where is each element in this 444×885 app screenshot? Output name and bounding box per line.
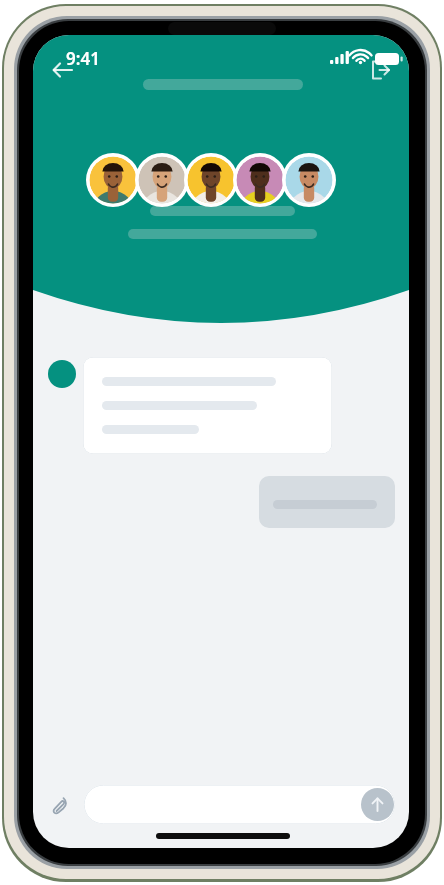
button[interactable]: Member 1 [86, 153, 140, 207]
button[interactable]: Member 4 [233, 153, 287, 207]
button[interactable]: Back [41, 49, 83, 91]
staticText: 9:41 [66, 47, 100, 70]
button[interactable]: Member 3 [184, 153, 238, 207]
button[interactable]: Log out [360, 49, 402, 91]
button[interactable]: Member 2 [135, 153, 189, 207]
button[interactable]: Member 5 [282, 153, 336, 207]
button[interactable] [84, 785, 395, 824]
button[interactable] [83, 357, 332, 454]
button[interactable] [259, 476, 395, 528]
button[interactable]: Send [361, 788, 394, 821]
button[interactable]: Attach file [41, 785, 79, 823]
